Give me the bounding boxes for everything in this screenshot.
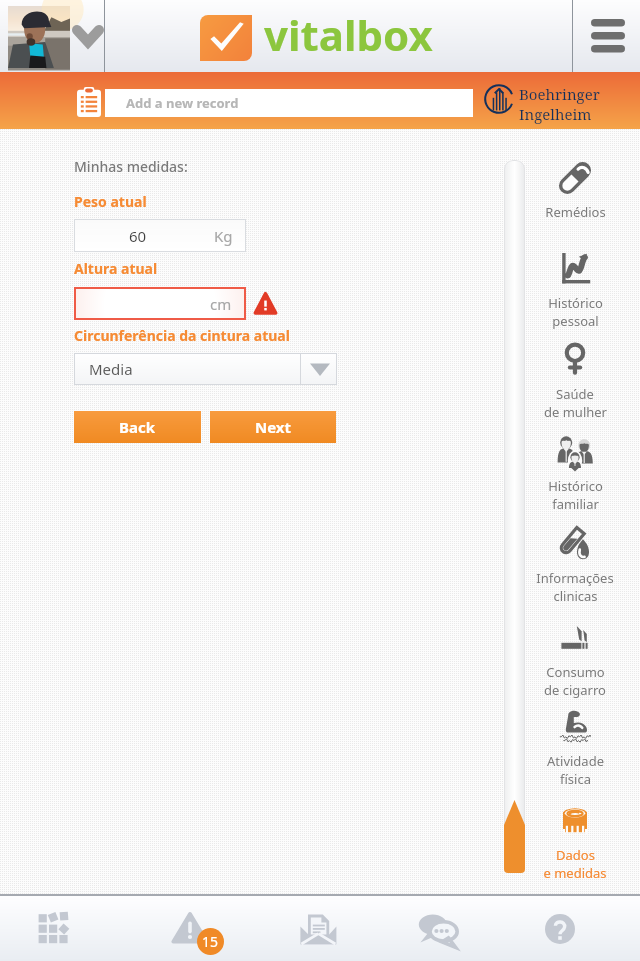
- staticText: Ingelheim: [519, 104, 592, 124]
- button[interactable]: Add a new record: [105, 89, 473, 117]
- staticText: de cigarro: [544, 681, 606, 699]
- button[interactable]: Alerts: [130, 896, 250, 961]
- button[interactable]: cm: [76, 289, 244, 318]
- staticText: Media: [89, 359, 133, 379]
- staticText: Consumo: [546, 663, 605, 681]
- button[interactable]: Next: [210, 411, 336, 443]
- button[interactable]: Remédios: [534, 158, 616, 221]
- staticText: vitalbox: [264, 6, 433, 63]
- button[interactable]: Histórico: [534, 432, 616, 513]
- button[interactable]: Dados: [534, 801, 616, 882]
- staticText: Remédios: [545, 203, 606, 221]
- staticText: familiar: [552, 495, 599, 513]
- button[interactable]: Atividade: [534, 707, 616, 788]
- button[interactable]: Help: [500, 896, 620, 961]
- staticText: Histórico: [548, 294, 603, 312]
- button[interactable]: Consumo: [534, 618, 616, 699]
- button[interactable]: Informações: [534, 524, 616, 605]
- button[interactable]: Menu: [572, 0, 640, 72]
- button[interactable]: Histórico: [534, 249, 616, 330]
- staticText: Circunferência da cintura atual: [74, 326, 290, 345]
- staticText: Kg: [214, 226, 233, 246]
- staticText: 60: [129, 226, 147, 246]
- button[interactable]: Messages: [258, 896, 378, 961]
- staticText: Add a new record: [126, 94, 239, 112]
- button[interactable]: Chat: [378, 896, 498, 961]
- staticText: 15: [202, 932, 219, 951]
- staticText: física: [560, 770, 591, 788]
- staticText: Atividade: [547, 752, 604, 770]
- staticText: Dados: [556, 846, 595, 864]
- staticText: Back: [119, 417, 156, 437]
- staticText: Minhas medidas:: [74, 157, 188, 176]
- staticText: Next: [255, 417, 292, 437]
- staticText: Saúde: [556, 385, 594, 403]
- button[interactable]: Back: [74, 411, 201, 443]
- button[interactable]: Media: [74, 353, 337, 385]
- staticText: Altura atual: [74, 259, 158, 278]
- button[interactable]: Expand profile: [72, 0, 104, 72]
- staticText: Histórico: [548, 477, 603, 495]
- staticText: de mulher: [544, 403, 607, 421]
- button[interactable]: Apps: [0, 896, 108, 961]
- staticText: cm: [210, 294, 232, 314]
- staticText: clinicas: [553, 587, 598, 605]
- staticText: pessoal: [552, 312, 599, 330]
- staticText: Peso atual: [74, 192, 147, 211]
- button[interactable]: 60: [75, 220, 245, 251]
- staticText: e medidas: [543, 864, 607, 882]
- staticText: Informações: [536, 569, 614, 587]
- button[interactable]: Profile photo: [8, 6, 70, 68]
- button[interactable]: Saúde: [534, 340, 616, 421]
- staticText: Boehringer: [519, 84, 600, 104]
